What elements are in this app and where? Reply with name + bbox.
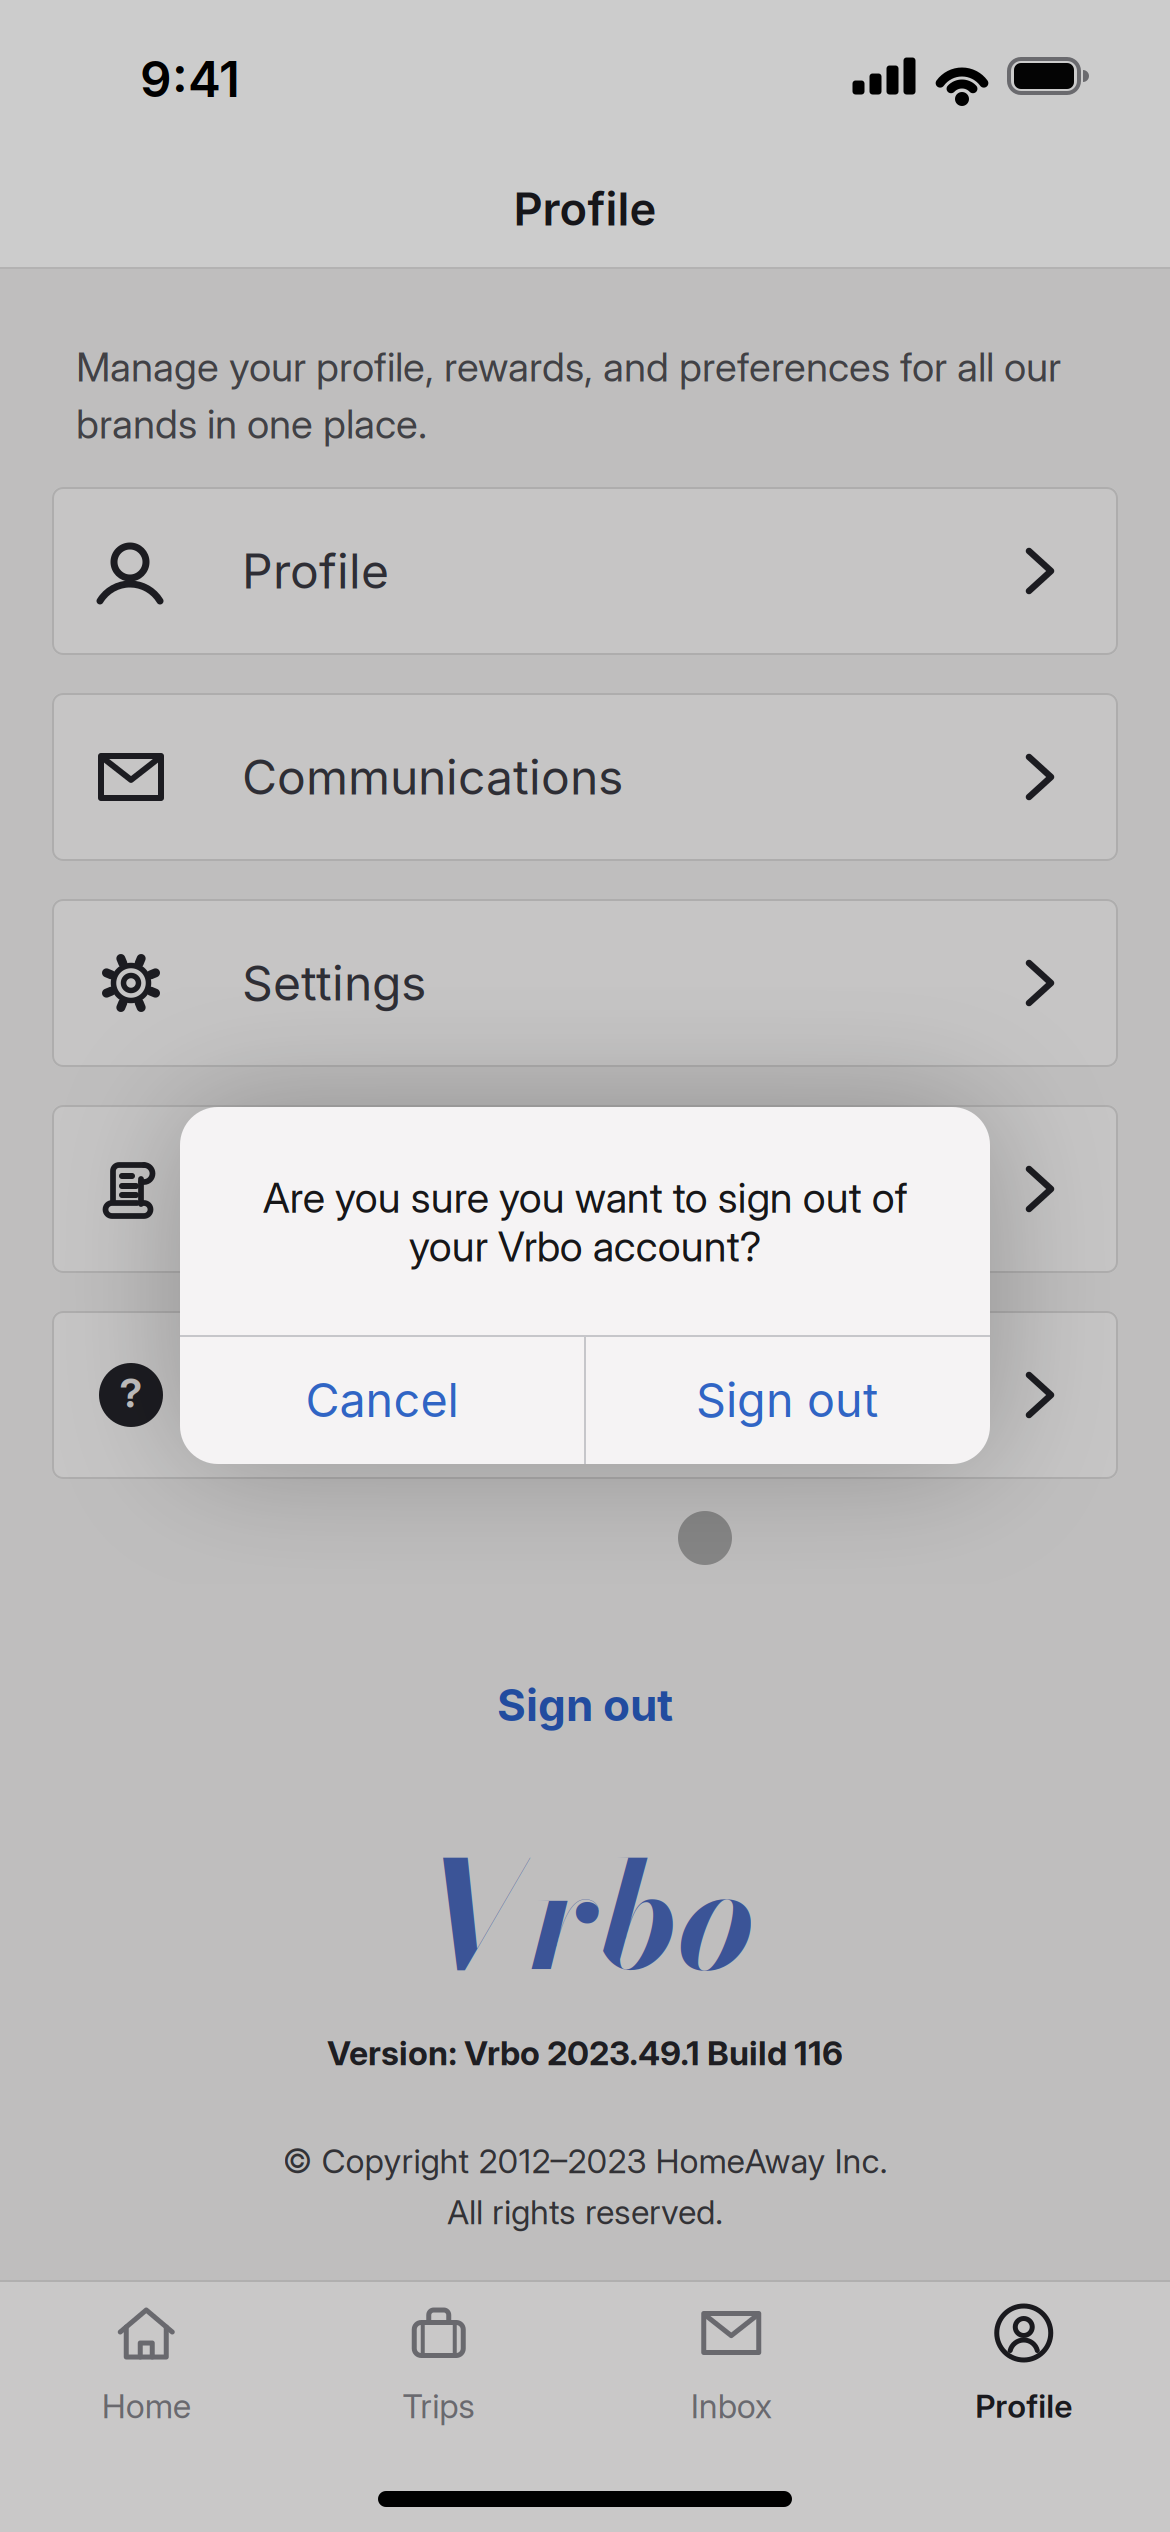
staticText: Sign out <box>696 1372 878 1428</box>
staticText: ? <box>119 1369 142 1417</box>
button[interactable]: Settings <box>52 899 1118 1067</box>
button[interactable]: Trips <box>292 2280 585 2480</box>
button[interactable]: Sign out <box>585 1336 989 1464</box>
staticText: Version: Vrbo 2023.49.1 Build 116 <box>327 2033 843 2073</box>
staticText: Profile <box>242 543 389 599</box>
staticText: brands in one place. <box>76 400 427 448</box>
staticText: Trips <box>402 2386 475 2426</box>
staticText: Profile <box>513 182 656 236</box>
staticText: Communications <box>242 749 623 805</box>
button[interactable]: Inbox <box>585 2280 877 2480</box>
staticText: Home <box>102 2386 191 2426</box>
staticText: Cancel <box>305 1372 458 1428</box>
staticText: All rights reserved. <box>447 2192 723 2232</box>
staticText: Settings <box>242 955 426 1011</box>
button[interactable]: Cancel <box>180 1336 584 1464</box>
button[interactable]: Profile <box>52 487 1118 655</box>
button[interactable]: Profile <box>877 2280 1170 2480</box>
staticText: Are you sure you want to sign out of you… <box>262 1173 907 1271</box>
button[interactable]: Terms and conditions <box>52 1105 1118 1273</box>
staticText: Vrbo <box>415 1801 755 2029</box>
staticText: Manage your profile, rewards, and prefer… <box>76 343 1061 391</box>
button[interactable]: Help <box>52 1311 1118 1479</box>
staticText: Profile <box>975 2387 1072 2425</box>
staticText: 9:41 <box>140 50 240 108</box>
button[interactable]: Communications <box>52 693 1118 861</box>
staticText: Sign out <box>497 1679 673 1731</box>
staticText: © Copyright 2012–2023 HomeAway Inc. <box>282 2141 887 2181</box>
button[interactable]: Home <box>0 2280 292 2480</box>
staticText: Inbox <box>691 2386 772 2426</box>
button[interactable]: Sign out <box>385 1655 785 1755</box>
